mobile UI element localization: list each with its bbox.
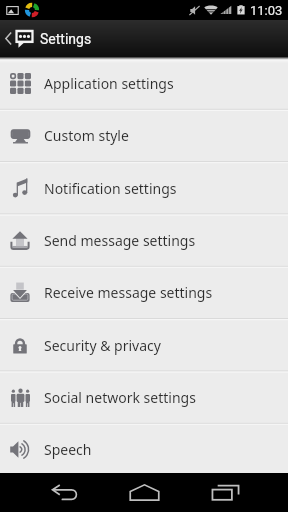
staticText: Send message settings [44,231,196,250]
staticText: Notification settings [44,179,177,198]
button[interactable]: Home [104,473,184,512]
button[interactable]: Recent apps [189,473,261,512]
button[interactable]: Security & privacy [0,319,288,371]
button[interactable]: Back [28,473,100,512]
button[interactable]: Send message settings [0,214,288,266]
staticText: 11:03 [250,3,283,18]
button[interactable]: Custom style [0,109,288,161]
button[interactable] [0,29,40,48]
staticText: Security & privacy [44,336,161,355]
button[interactable]: Application settings [0,57,288,109]
button[interactable]: Speech [0,423,288,475]
button[interactable]: Social network settings [0,371,288,423]
staticText: Custom style [44,126,129,145]
staticText: Social network settings [44,388,196,407]
staticText: Application settings [44,74,174,93]
button[interactable]: Receive message settings [0,266,288,318]
staticText: Settings [40,31,92,47]
button[interactable]: Notification settings [0,162,288,214]
staticText: Receive message settings [44,283,213,302]
staticText: Speech [44,440,92,459]
